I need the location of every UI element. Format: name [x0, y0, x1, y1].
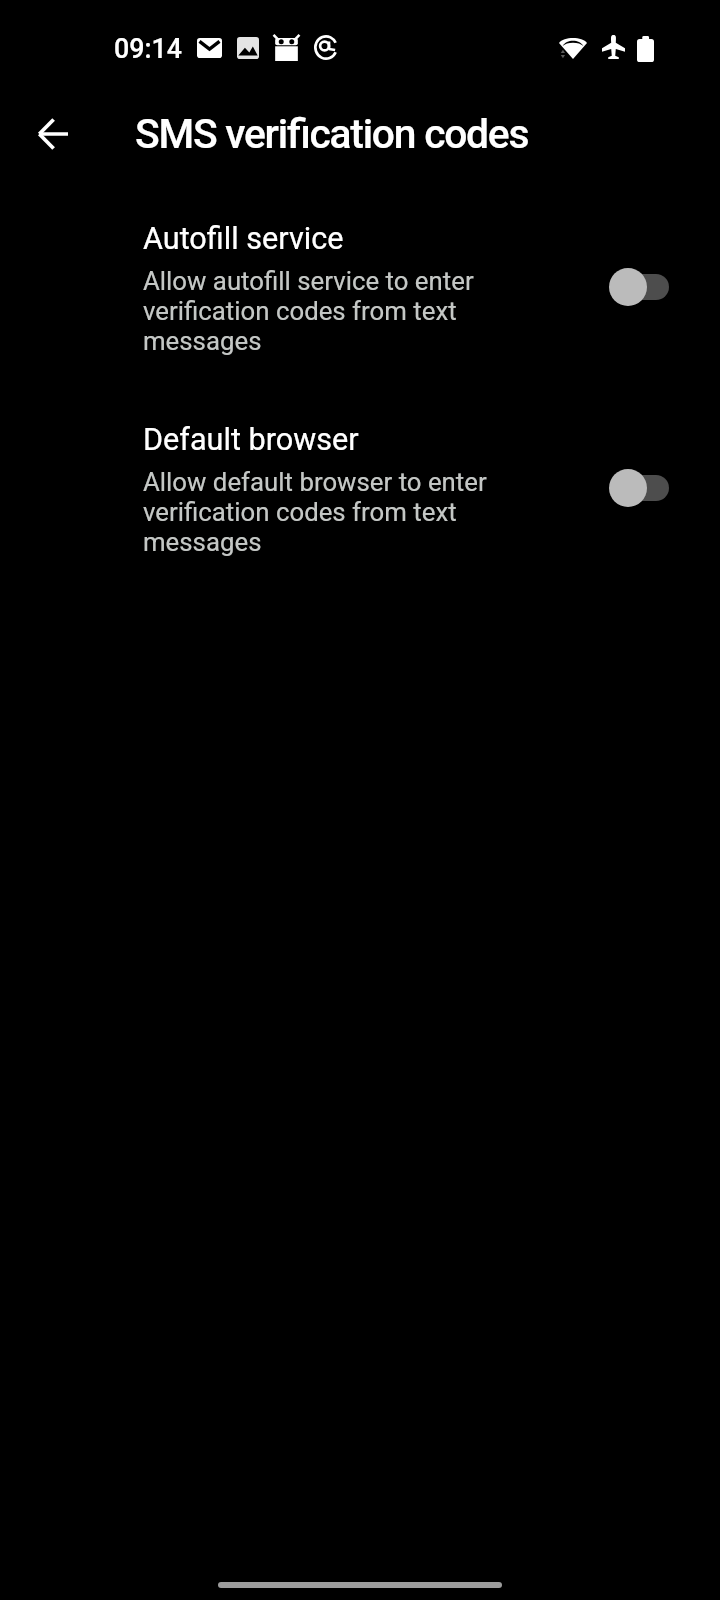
staticText: Allow autofill service to enter verifica… [143, 267, 505, 357]
staticText: 09:14 [114, 33, 182, 64]
staticText: SMS verification codes [135, 110, 529, 158]
staticText: Default browser [143, 422, 359, 458]
staticText: Autofill service [143, 221, 344, 257]
button[interactable]: Back [10, 91, 96, 177]
staticText: Allow default browser to enter verificat… [143, 468, 505, 558]
button[interactable]: Default browser toggle, off [609, 469, 669, 507]
button[interactable]: Autofill service toggle, off [609, 268, 669, 306]
button[interactable]: Default browser [0, 406, 720, 574]
button[interactable]: Autofill service [0, 205, 720, 373]
